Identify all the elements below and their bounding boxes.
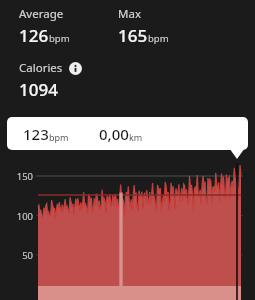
- staticText: 0,00: [99, 124, 129, 144]
- button[interactable]: Max: [109, 6, 255, 47]
- button[interactable]: Calories: [19, 60, 255, 76]
- staticText: 150: [0, 170, 33, 183]
- staticText: Max: [118, 6, 141, 22]
- staticText: Average: [19, 6, 64, 22]
- button[interactable]: 123: [7, 117, 248, 150]
- staticText: km: [129, 131, 143, 143]
- staticText: bpm: [148, 32, 169, 45]
- staticText: Calories: [19, 60, 63, 76]
- staticText: 123: [23, 124, 49, 144]
- button[interactable]: Average: [0, 6, 109, 47]
- other: Calories info: [69, 62, 82, 75]
- staticText: 165: [118, 24, 148, 47]
- staticText: 50: [0, 249, 33, 262]
- staticText: 100: [0, 210, 33, 223]
- staticText: bpm: [49, 131, 69, 143]
- staticText: 126: [19, 24, 49, 47]
- staticText: bpm: [49, 32, 70, 45]
- staticText: 1094: [19, 78, 58, 101]
